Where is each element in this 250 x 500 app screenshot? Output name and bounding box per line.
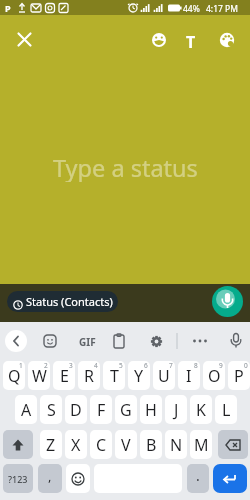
button[interactable]: F: [90, 395, 112, 424]
button[interactable]: V: [115, 430, 137, 459]
staticText: N: [170, 434, 183, 456]
staticText: V: [121, 434, 131, 456]
staticText: 44%: [183, 3, 200, 15]
button[interactable]: [218, 430, 248, 459]
staticText: C: [96, 434, 107, 456]
staticText: 9: [219, 361, 223, 370]
button[interactable]: M: [190, 430, 212, 459]
staticText: Type a status: [53, 152, 198, 182]
staticText: T: [186, 31, 196, 49]
button[interactable]: [43, 334, 57, 348]
button[interactable]: G: [115, 395, 137, 424]
button[interactable]: C: [90, 430, 112, 459]
staticText: F: [97, 399, 106, 421]
button[interactable]: ?123: [3, 464, 33, 493]
button[interactable]: GIF: [77, 335, 97, 347]
staticText: 4:17 PM: [206, 3, 238, 15]
button[interactable]: [212, 286, 243, 317]
staticText: Z: [46, 434, 56, 456]
staticText: 5: [119, 361, 123, 370]
button[interactable]: K: [190, 395, 212, 424]
staticText: 4: [94, 361, 98, 370]
button[interactable]: [229, 332, 243, 350]
button[interactable]: N: [165, 430, 187, 459]
staticText: K: [196, 399, 206, 421]
staticText: M: [194, 434, 209, 456]
staticText: Y: [134, 365, 144, 387]
button[interactable]: [151, 32, 167, 48]
button[interactable]: [213, 464, 247, 493]
button[interactable]: X: [65, 430, 87, 459]
staticText: R: [84, 365, 94, 387]
button[interactable]: S: [40, 395, 62, 424]
button[interactable]: [14, 29, 35, 50]
staticText: 0: [244, 361, 248, 370]
staticText: 2: [44, 361, 48, 370]
button[interactable]: L: [215, 395, 237, 424]
staticText: 6: [144, 361, 148, 370]
staticText: 1: [19, 361, 23, 370]
button[interactable]: T: [103, 361, 125, 390]
staticText: P: [5, 2, 11, 14]
staticText: 3: [69, 361, 73, 370]
button[interactable]: [5, 330, 27, 352]
staticText: I: [186, 365, 192, 387]
staticText: B: [146, 434, 157, 456]
button[interactable]: Status (Contacts): [7, 291, 118, 312]
staticText: G: [120, 399, 132, 421]
button[interactable]: Y: [128, 361, 150, 390]
button[interactable]: J: [165, 395, 187, 424]
staticText: H: [145, 399, 157, 421]
button[interactable]: [149, 334, 164, 349]
staticText: Status (Contacts): [26, 294, 113, 309]
button[interactable]: R: [78, 361, 100, 390]
staticText: GIF: [79, 335, 96, 347]
button[interactable]: B: [140, 430, 162, 459]
staticText: ,: [48, 467, 52, 485]
button[interactable]: [3, 430, 33, 459]
staticText: P: [234, 365, 244, 387]
button[interactable]: H: [140, 395, 162, 424]
staticText: S: [47, 399, 56, 421]
button[interactable]: P: [228, 361, 250, 390]
staticText: O: [208, 365, 221, 387]
button[interactable]: O: [203, 361, 225, 390]
staticText: A: [21, 399, 32, 421]
staticText: J: [174, 399, 179, 421]
staticText: 8: [194, 361, 198, 370]
staticText: L: [222, 399, 231, 421]
staticText: .: [196, 466, 200, 485]
button[interactable]: [112, 333, 126, 349]
staticText: E: [60, 365, 69, 387]
button[interactable]: [66, 464, 90, 493]
button[interactable]: ,: [38, 464, 62, 493]
button[interactable]: [219, 32, 235, 48]
staticText: U: [158, 365, 170, 387]
button[interactable]: .: [187, 464, 209, 493]
button[interactable]: I: [178, 361, 200, 390]
staticText: Q: [8, 365, 21, 387]
staticText: T: [110, 365, 119, 387]
staticText: D: [70, 399, 82, 421]
staticText: ?123: [8, 473, 28, 485]
button[interactable]: E: [53, 361, 75, 390]
staticText: W: [32, 365, 47, 387]
staticText: 7: [169, 361, 173, 370]
button[interactable]: U: [153, 361, 175, 390]
button[interactable]: [192, 337, 208, 345]
staticText: X: [71, 434, 81, 456]
button[interactable]: W: [28, 361, 50, 390]
button[interactable]: D: [65, 395, 87, 424]
button[interactable]: Z: [40, 430, 62, 459]
button[interactable]: Q: [3, 361, 25, 390]
button[interactable]: A: [15, 395, 37, 424]
button[interactable]: T: [184, 31, 198, 49]
